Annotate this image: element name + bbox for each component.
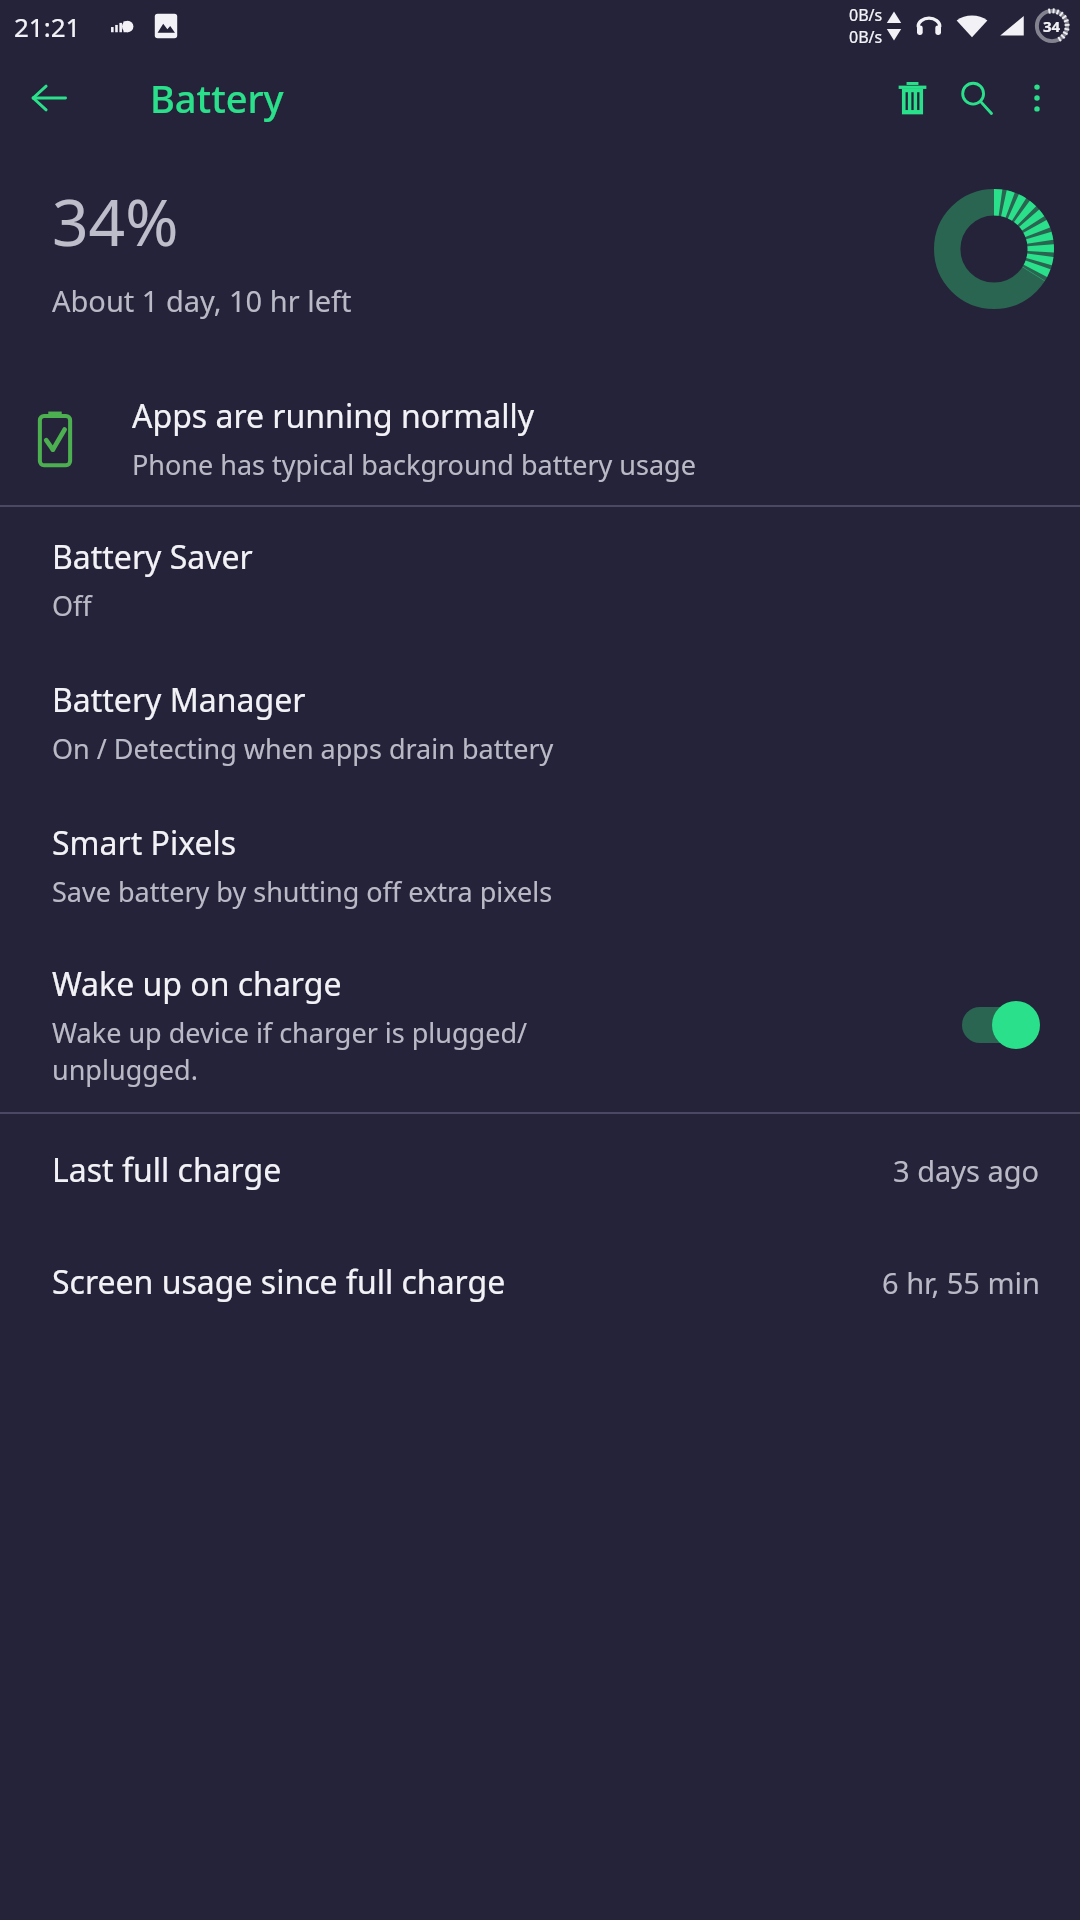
staticText: Phone has typical background battery usa… xyxy=(132,446,696,483)
staticText: 6 hr, 55 min xyxy=(882,1263,1040,1302)
staticText: Screen usage since full charge xyxy=(52,1260,882,1304)
staticText: Last full charge xyxy=(52,1148,893,1192)
staticText: Battery Manager xyxy=(52,678,306,722)
staticText: Save battery by shutting off extra pixel… xyxy=(52,873,553,910)
button[interactable]: Wake up on charge xyxy=(0,936,1080,1112)
staticText: 21:21 xyxy=(14,9,81,44)
button[interactable]: More options xyxy=(1008,69,1066,127)
button[interactable] xyxy=(960,1001,1046,1049)
staticText: Apps are running normally xyxy=(132,394,534,438)
staticText: 3 days ago xyxy=(893,1151,1040,1190)
button[interactable]: Apps are running normally xyxy=(0,378,1080,505)
staticText: Battery Saver xyxy=(52,535,253,579)
button[interactable]: Battery Manager xyxy=(0,650,1080,793)
staticText: 34 xyxy=(1043,16,1061,36)
staticText: 0B/s xyxy=(849,26,883,48)
staticText: 0B/s xyxy=(849,4,883,26)
button[interactable]: Delete xyxy=(880,66,944,130)
staticText: Wake up device if charger is plugged/ un… xyxy=(52,1014,528,1088)
staticText: About 1 day, 10 hr left xyxy=(52,281,352,320)
staticText: Off xyxy=(52,587,92,624)
staticText: Wake up on charge xyxy=(52,962,342,1006)
button[interactable]: Last full charge xyxy=(0,1114,1080,1226)
staticText: On / Detecting when apps drain battery xyxy=(52,730,554,767)
staticText: Battery xyxy=(150,72,284,124)
button[interactable]: Smart Pixels xyxy=(0,793,1080,936)
button[interactable]: Battery Saver xyxy=(0,507,1080,650)
button[interactable]: Screen usage since full charge xyxy=(0,1226,1080,1338)
staticText: Smart Pixels xyxy=(52,821,237,865)
button[interactable]: Search xyxy=(944,66,1008,130)
button[interactable]: Back xyxy=(20,69,78,127)
staticText: 34% xyxy=(52,178,179,265)
